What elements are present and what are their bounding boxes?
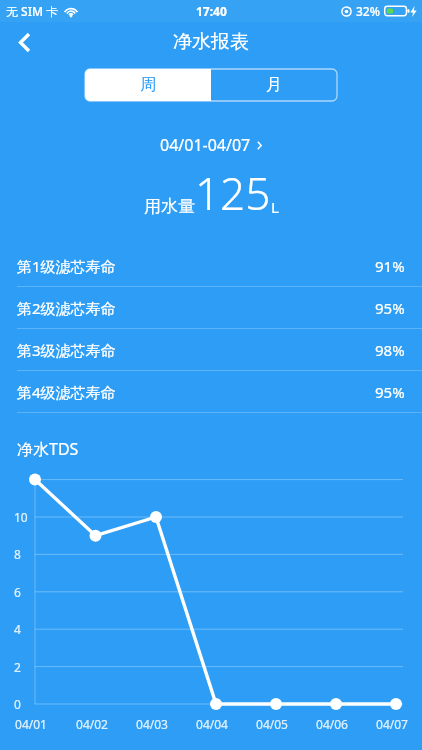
staticText: 98% [375,340,405,360]
staticText: L [271,197,279,217]
button[interactable]: Back [0,22,48,62]
staticText: 6 [14,584,21,600]
button[interactable]: 周 [85,69,211,101]
button[interactable]: 第4级滤芯寿命 [0,371,422,412]
staticText: 125 [195,163,271,223]
staticText: 第3级滤芯寿命 [17,340,116,360]
button[interactable]: 月 [211,69,337,101]
staticText: 91% [375,256,405,276]
staticText: 04/02 [76,716,108,732]
staticText: 无 SIM 卡 [6,3,59,19]
staticText: 第1级滤芯寿命 [17,256,116,276]
staticText: 0 [14,696,21,712]
staticText: 用水量 [144,196,195,217]
staticText: 8 [14,546,21,562]
staticText: 04/01 [15,716,47,732]
staticText: 04/04 [196,716,228,732]
staticText: 月 [266,75,282,95]
staticText: 32% [356,3,380,19]
staticText: 04/07 [376,716,408,732]
staticText: 10 [14,509,28,525]
staticText: 17:40 [196,3,227,19]
staticText: 04/03 [136,716,168,732]
staticText: 95% [375,382,405,402]
staticText: 净水报表 [173,30,249,54]
button[interactable]: 04/01-04/07 [154,131,268,159]
button[interactable]: 第1级滤芯寿命 [0,245,422,286]
staticText: 2 [14,659,21,675]
staticText: 周 [140,75,156,95]
staticText: 4 [14,621,21,637]
staticText: 第2级滤芯寿命 [17,298,116,318]
button[interactable]: 第3级滤芯寿命 [0,329,422,370]
staticText: 95% [375,298,405,318]
staticText: 净水TDS [17,438,79,460]
button[interactable]: 第2级滤芯寿命 [0,287,422,328]
staticText: 04/06 [316,716,348,732]
staticText: 04/05 [256,716,288,732]
staticText: 第4级滤芯寿命 [17,382,116,402]
staticText: 04/01-04/07 [160,134,251,156]
